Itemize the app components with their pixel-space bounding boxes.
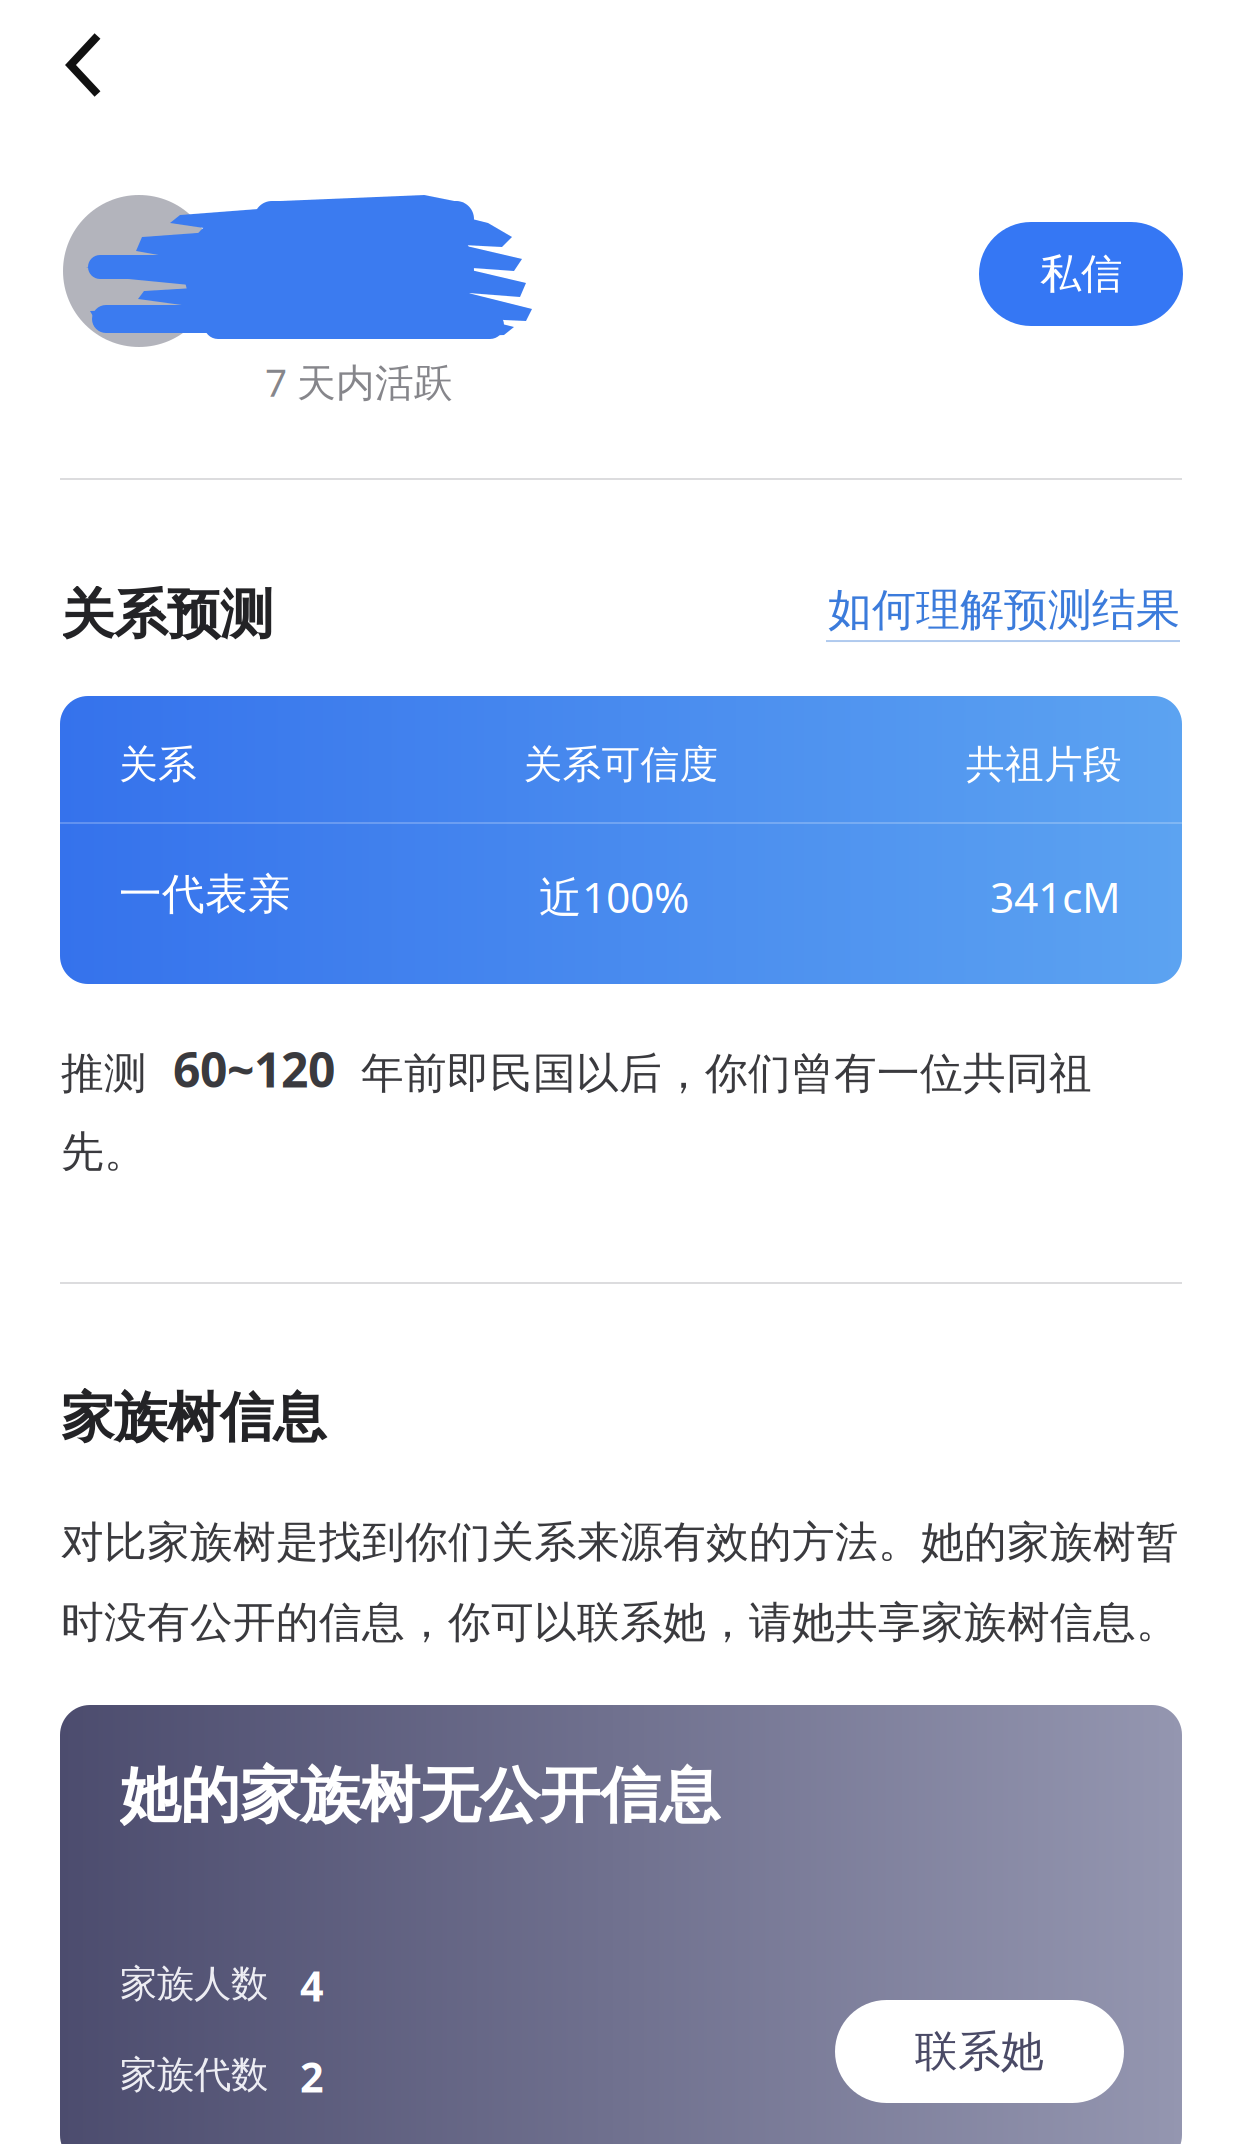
staticText: 4 <box>300 1958 324 2013</box>
staticText: 家族人数 <box>120 1961 268 2007</box>
staticText: 联系她 <box>915 2025 1044 2078</box>
staticText: 341cM <box>990 868 1121 925</box>
staticText: 关系预测 <box>61 582 273 647</box>
staticText: 2 <box>300 2049 324 2104</box>
staticText: 近100% <box>539 868 689 925</box>
button[interactable]: 如何理解预测结果 <box>826 583 1180 642</box>
staticText: 一代表亲 <box>119 868 291 920</box>
button[interactable]: 联系她 <box>835 2000 1124 2103</box>
staticText: 关系可信度 <box>523 741 718 788</box>
staticText: 家族代数 <box>120 2052 268 2098</box>
staticText: 7 天内活跃 <box>265 356 453 407</box>
staticText: 推测 60~120 年前即民国以后，你们曾有一位共同祖先。 <box>61 1037 1092 1178</box>
staticText: 如何理解预测结果 <box>828 583 1180 637</box>
staticText: 私信 <box>1040 249 1122 299</box>
staticText: 关系 <box>119 741 197 788</box>
staticText: 她的家族树无公开信息 <box>120 1759 720 1833</box>
button[interactable]: 私信 <box>979 222 1183 326</box>
staticText: 家族树信息 <box>61 1385 326 1450</box>
button[interactable]: Profile <box>63 195 603 405</box>
staticText: 共祖片段 <box>966 741 1122 788</box>
button[interactable]: Back <box>29 10 139 120</box>
staticText: 对比家族树是找到你们关系来源有效的方法。她的家族树暂时没有公开的信息，你可以联系… <box>61 1516 1179 1649</box>
